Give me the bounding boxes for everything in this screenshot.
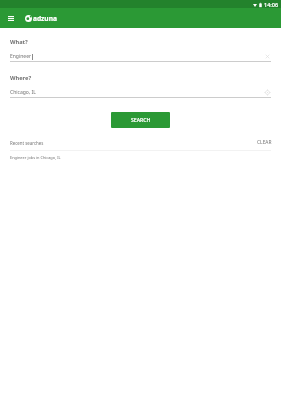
staticText: Engineer [10,53,32,60]
staticText: CLEAR [257,139,272,146]
staticText: Where? [10,74,32,82]
button[interactable]: Open navigation drawer [2,9,20,27]
staticText: What? [10,38,28,46]
staticText: SEARCH [131,117,151,124]
button[interactable]: adzuna [25,14,57,23]
button[interactable]: Use current location [264,89,271,96]
button[interactable]: SEARCH [111,112,170,128]
staticText: Chicago, IL [10,89,36,96]
button[interactable]: Engineer jobs in Chicago, IL [10,153,271,162]
button[interactable]: CLEAR [257,139,272,146]
staticText: 14:06 [264,1,279,8]
button[interactable]: Clear text [264,53,271,60]
staticText: adzuna [33,14,57,23]
staticText: Recent searches [10,140,44,146]
button[interactable]: Chicago, IL [10,89,271,96]
staticText: Engineer jobs in Chicago, IL [10,155,61,160]
button[interactable]: Engineer [10,53,271,60]
